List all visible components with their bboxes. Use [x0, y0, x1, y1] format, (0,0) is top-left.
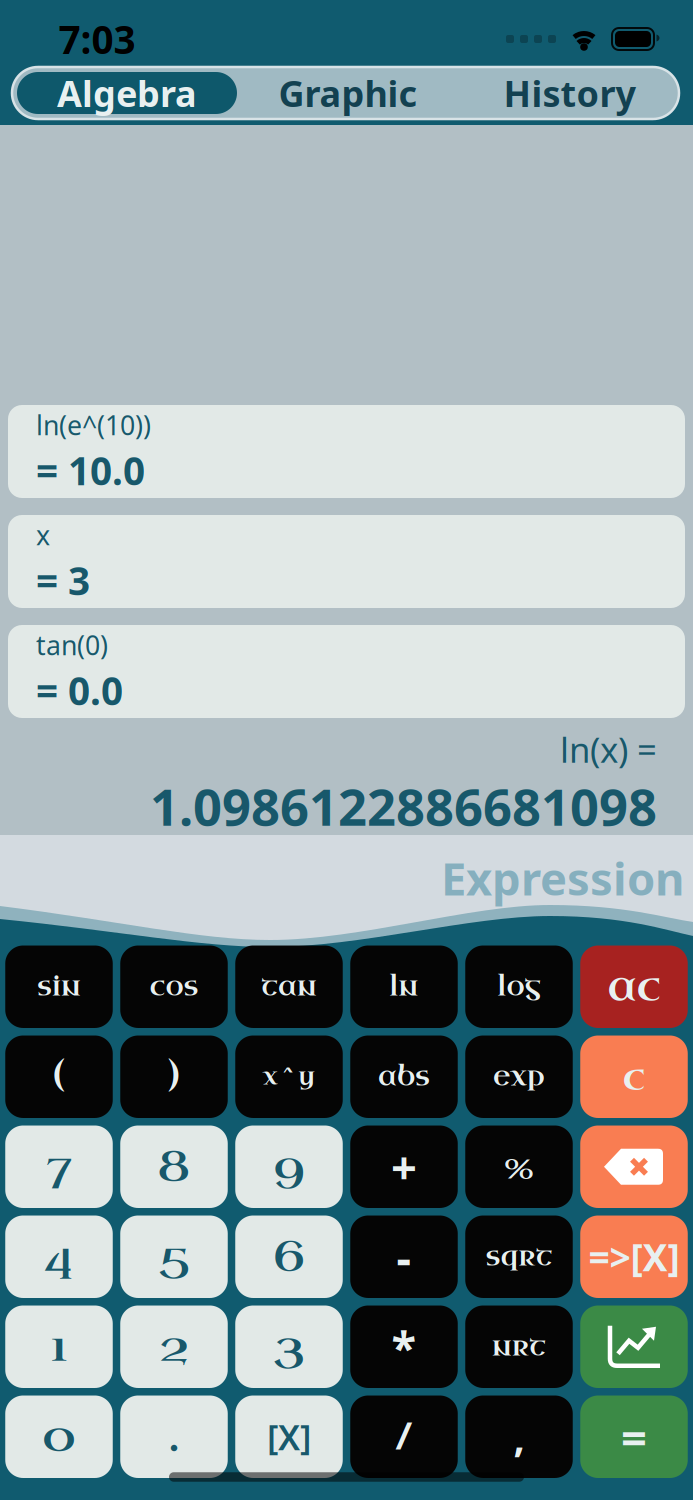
button[interactable]: abs [350, 1035, 458, 1118]
staticText: c [622, 1051, 645, 1102]
staticText: = 10.0 [36, 444, 145, 496]
staticText: x [36, 517, 50, 552]
button[interactable]: 2 [120, 1305, 228, 1388]
button[interactable]: tan(0) [8, 625, 685, 718]
button[interactable]: ln [350, 945, 458, 1028]
staticText: ln(x) = [560, 726, 657, 772]
staticText: - [396, 1227, 411, 1287]
staticText: 1.0986122886681098 [150, 772, 657, 840]
button[interactable]: 1 [5, 1305, 113, 1388]
staticText: sin [37, 969, 81, 1004]
button[interactable]: [X] [235, 1395, 343, 1478]
button[interactable]: ln(e^(10)) [8, 405, 685, 498]
button[interactable]: 8 [120, 1125, 228, 1208]
staticText: Algebra [57, 69, 197, 117]
staticText: 2 [159, 1319, 189, 1375]
button[interactable]: / [350, 1395, 458, 1478]
staticText: * [391, 1317, 416, 1377]
staticText: sqrt [485, 1239, 552, 1274]
staticText: exp [493, 1059, 545, 1094]
button[interactable]: x ^ y [235, 1035, 343, 1118]
button[interactable]: cos [120, 945, 228, 1028]
staticText: ( [53, 1053, 65, 1100]
staticText: 4 [44, 1229, 73, 1285]
button[interactable]: ac [580, 945, 688, 1028]
button[interactable]: History [459, 72, 681, 114]
staticText: Expression [441, 848, 684, 908]
staticText: History [503, 69, 636, 117]
staticText: ac [607, 960, 660, 1014]
button[interactable]: sqrt [465, 1215, 573, 1298]
staticText: + [391, 1137, 417, 1197]
button[interactable]: Algebra [17, 72, 237, 114]
staticText: ln(e^(10)) [36, 407, 151, 442]
staticText: / [394, 1411, 413, 1462]
staticText: tan [261, 969, 317, 1004]
staticText: ) [168, 1053, 180, 1100]
button[interactable]: ) [120, 1035, 228, 1118]
button[interactable]: % [465, 1125, 573, 1208]
button[interactable]: , [465, 1395, 573, 1478]
button[interactable]: exp [465, 1035, 573, 1118]
button[interactable]: ( [5, 1035, 113, 1118]
staticText: = [621, 1407, 647, 1467]
staticText: 7:03 [58, 13, 135, 65]
staticText: ln [389, 969, 418, 1004]
button[interactable]: 9 [235, 1125, 343, 1208]
staticText: =>[X] [588, 1232, 679, 1282]
button[interactable]: - [350, 1215, 458, 1298]
staticText: 1 [50, 1319, 67, 1375]
button[interactable]: 7 [5, 1125, 113, 1208]
staticText: . [168, 1409, 179, 1465]
button[interactable]: 6 [235, 1215, 343, 1298]
button[interactable]: Plot [580, 1305, 688, 1388]
staticText: % [504, 1143, 534, 1190]
staticText: [X] [267, 1414, 311, 1460]
staticText: = 0.0 [36, 664, 123, 716]
staticText: 0 [42, 1409, 76, 1465]
button[interactable]: 0 [5, 1395, 113, 1478]
button[interactable]: tan [235, 945, 343, 1028]
button[interactable]: = [580, 1395, 688, 1478]
staticText: cos [149, 969, 198, 1004]
staticText: nrt [492, 1329, 546, 1364]
staticText: abs [378, 1059, 430, 1094]
button[interactable]: sin [5, 945, 113, 1028]
button[interactable]: log [465, 945, 573, 1028]
button[interactable]: =>[X] [580, 1215, 688, 1298]
staticText: tan(0) [36, 627, 108, 662]
staticText: 3 [273, 1319, 304, 1375]
staticText: 8 [157, 1139, 190, 1195]
staticText: 7 [46, 1139, 71, 1195]
staticText: 6 [273, 1229, 305, 1285]
staticText: = 3 [36, 554, 90, 606]
button[interactable]: 4 [5, 1215, 113, 1298]
staticText: log [497, 969, 540, 1004]
staticText: Graphic [278, 69, 417, 117]
button[interactable]: Graphic [237, 72, 459, 114]
button[interactable]: * [350, 1305, 458, 1388]
button[interactable]: + [350, 1125, 458, 1208]
staticText: x ^ y [262, 1061, 315, 1093]
staticText: 5 [159, 1229, 189, 1285]
staticText: 9 [273, 1139, 304, 1195]
button[interactable]: 3 [235, 1305, 343, 1388]
button[interactable]: nrt [465, 1305, 573, 1388]
button[interactable]: c [580, 1035, 688, 1118]
button[interactable]: Delete [580, 1125, 688, 1208]
staticText: , [513, 1410, 524, 1463]
button[interactable]: . [120, 1395, 228, 1478]
button[interactable]: x [8, 515, 685, 608]
button[interactable]: 5 [120, 1215, 228, 1298]
